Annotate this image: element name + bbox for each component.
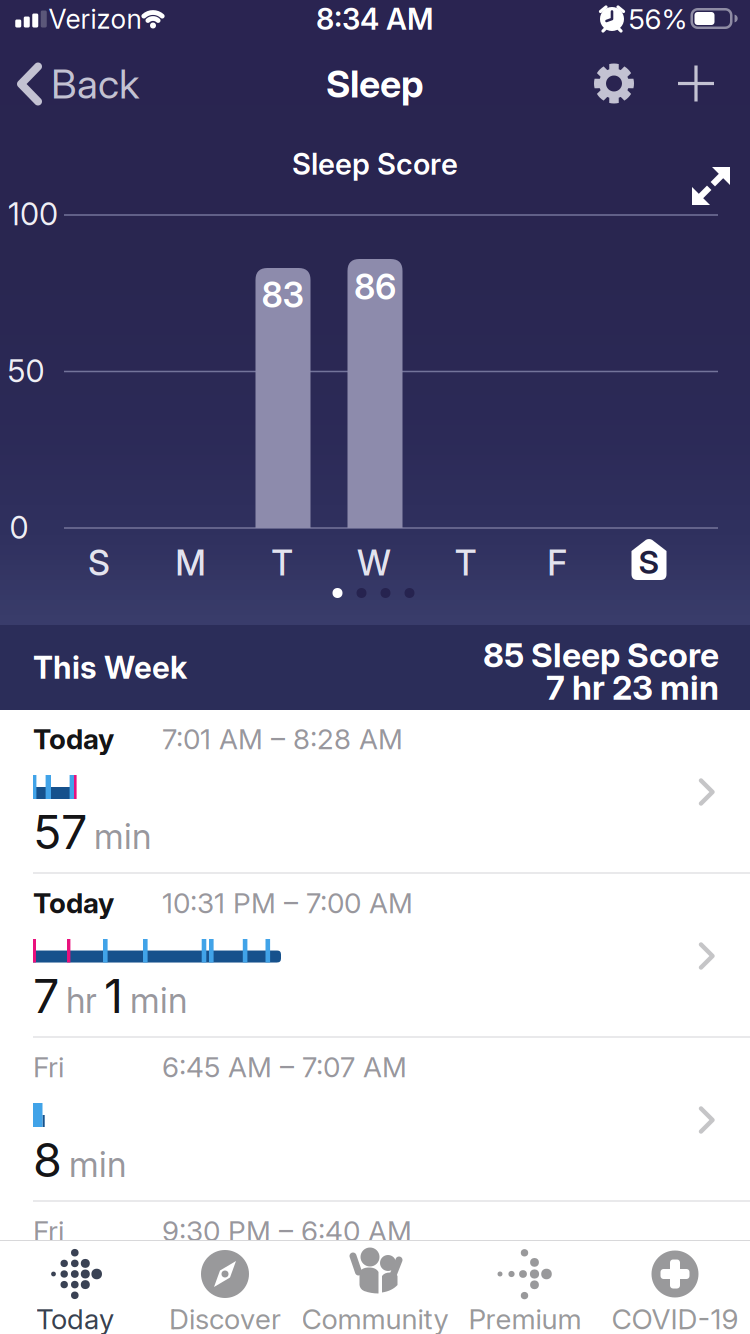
staticText: W: [357, 543, 391, 583]
staticText: 9:30 PM – 6:40 AM: [162, 1214, 412, 1247]
staticText: 7: [33, 968, 59, 1024]
staticText: 1: [104, 968, 123, 1024]
button[interactable]: Community: [300, 1241, 450, 1334]
staticText: 0: [9, 509, 28, 546]
staticText: 7:01 AM – 8:28 AM: [162, 722, 403, 755]
staticText: S: [88, 543, 110, 583]
button[interactable]: Today: [0, 1241, 150, 1334]
button[interactable]: Discover: [150, 1241, 300, 1334]
staticText: 86: [354, 267, 396, 307]
staticText: 7 hr 23 min: [546, 668, 719, 707]
staticText: S: [638, 543, 659, 581]
staticText: 56%: [628, 2, 687, 35]
button[interactable]: COVID-19: [600, 1241, 750, 1334]
staticText: Today: [36, 1302, 114, 1334]
staticText: Community: [301, 1302, 448, 1334]
staticText: COVID-19: [611, 1302, 738, 1334]
staticText: 8: [33, 1132, 62, 1188]
button[interactable]: Fri: [0, 1038, 750, 1202]
staticText: hr: [66, 980, 97, 1021]
staticText: 57: [33, 804, 87, 860]
staticText: Verizon: [48, 3, 141, 35]
staticText: 8:34 AM: [316, 2, 434, 36]
staticText: min: [94, 816, 151, 857]
staticText: 100: [8, 196, 58, 232]
button[interactable]: Add: [677, 64, 715, 102]
staticText: M: [175, 543, 206, 583]
staticText: 85 Sleep Score: [483, 635, 719, 675]
staticText: 50: [7, 353, 44, 389]
staticText: Fri: [33, 1214, 64, 1247]
staticText: Back: [51, 60, 139, 108]
button[interactable]: Back: [17, 60, 139, 108]
staticText: 6:45 AM – 7:07 AM: [162, 1050, 407, 1083]
staticText: Discover: [169, 1302, 281, 1334]
staticText: Today: [33, 886, 114, 919]
staticText: min: [130, 980, 187, 1021]
staticText: 10:31 PM – 7:00 AM: [162, 886, 413, 919]
staticText: Premium: [468, 1302, 581, 1334]
button[interactable]: Premium: [450, 1241, 600, 1334]
staticText: min: [69, 1144, 126, 1185]
staticText: 83: [261, 275, 304, 315]
staticText: Sleep Score: [292, 147, 458, 181]
button[interactable]: Today: [0, 710, 750, 874]
staticText: Today: [33, 722, 114, 755]
staticText: T: [271, 543, 293, 583]
staticText: Sleep: [326, 62, 424, 106]
staticText: This Week: [33, 649, 187, 686]
staticText: Fri: [33, 1050, 64, 1083]
button[interactable]: Today: [0, 874, 750, 1038]
button[interactable]: Settings: [592, 61, 636, 105]
staticText: F: [547, 543, 567, 583]
staticText: T: [455, 543, 477, 583]
button[interactable]: Fri: [0, 1202, 750, 1240]
